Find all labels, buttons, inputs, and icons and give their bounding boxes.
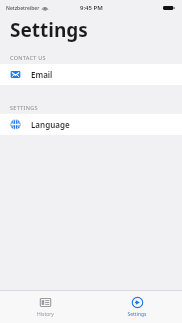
staticText: History	[37, 311, 54, 318]
staticText: Settings	[10, 17, 88, 43]
staticText: CONTACT US	[10, 54, 46, 61]
button[interactable]: History	[0, 291, 91, 323]
button[interactable]: Settings	[91, 291, 182, 323]
staticText: Email	[31, 69, 53, 80]
staticText: 9:45 PM	[80, 4, 103, 12]
staticText: Language	[31, 119, 70, 130]
button[interactable]: Language	[0, 114, 182, 135]
button[interactable]: Email	[0, 64, 182, 85]
staticText: SETTINGS	[10, 104, 38, 111]
staticText: Netzbetreiber	[6, 5, 40, 12]
staticText: Settings	[127, 311, 147, 318]
